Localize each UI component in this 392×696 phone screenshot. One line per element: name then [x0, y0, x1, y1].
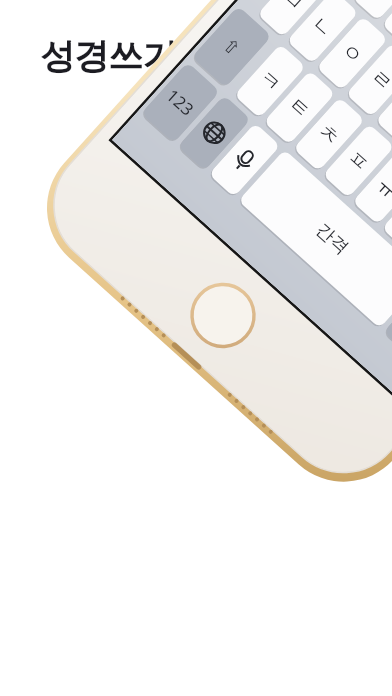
button[interactable]: 성경쓰기를 해보세요 소개 화면 [0, 0, 392, 696]
